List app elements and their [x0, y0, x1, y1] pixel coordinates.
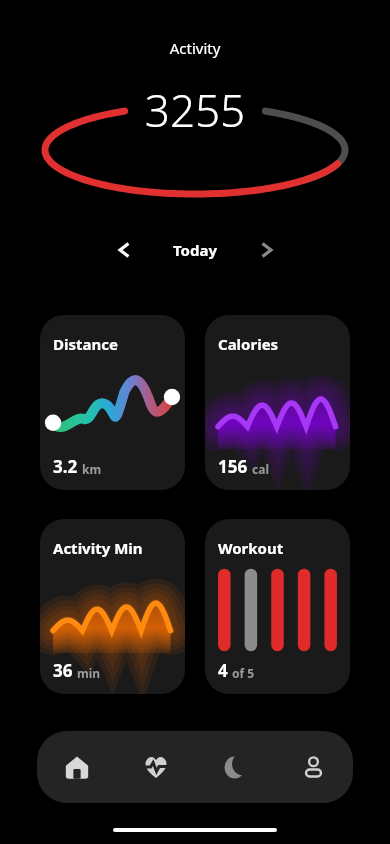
staticText: min	[77, 665, 101, 681]
staticText: Activity	[0, 38, 390, 58]
staticText: Today	[173, 240, 218, 260]
button[interactable]: Activity Min	[40, 519, 185, 694]
staticText: Activity Min	[53, 538, 143, 558]
button[interactable]: Sleep	[195, 731, 274, 803]
button[interactable]: Workout	[205, 519, 350, 694]
button[interactable]: Calories	[205, 315, 350, 490]
button[interactable]: Heart rate	[116, 731, 195, 803]
staticText: 3255	[0, 80, 390, 140]
button[interactable]: Home	[37, 731, 116, 803]
staticText: km	[82, 461, 102, 477]
button[interactable]: Next day	[250, 233, 284, 267]
button[interactable]: Today	[167, 235, 224, 265]
button[interactable]: Profile	[274, 731, 353, 803]
staticText: cal	[252, 461, 269, 477]
button[interactable]: Previous day	[107, 233, 141, 267]
button[interactable]: Distance	[40, 315, 185, 490]
staticText: 36	[53, 659, 73, 682]
staticText: Distance	[53, 334, 118, 354]
staticText: Calories	[218, 334, 279, 354]
staticText: of 5	[232, 665, 255, 681]
staticText: Workout	[218, 538, 284, 558]
staticText: 3.2	[53, 455, 78, 478]
staticText: 4	[218, 659, 228, 682]
staticText: 156	[218, 455, 248, 478]
